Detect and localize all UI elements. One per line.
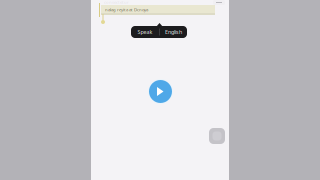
button[interactable]: Play: [148, 79, 173, 104]
staticText: nalag reyita at Dcnoya: [105, 7, 148, 12]
staticText: English: [165, 28, 182, 36]
button[interactable]: English: [160, 26, 187, 38]
button[interactable]: Assistant: [209, 128, 225, 144]
button[interactable]: Speak: [131, 26, 159, 38]
button[interactable]: More: [213, 0, 225, 5]
staticText: Speak: [137, 28, 152, 36]
